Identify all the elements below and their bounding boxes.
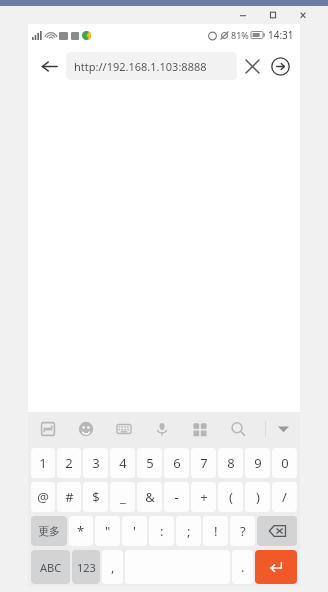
button[interactable]: / bbox=[272, 482, 297, 512]
button[interactable]: Apps bbox=[188, 417, 212, 441]
staticText: ABC bbox=[40, 560, 62, 575]
staticText: ? bbox=[240, 522, 246, 540]
button[interactable]: Maximize bbox=[258, 6, 288, 24]
staticText: # bbox=[65, 488, 74, 506]
staticText: ) bbox=[256, 488, 260, 506]
button[interactable]: Clear bbox=[239, 53, 265, 79]
staticText: ; bbox=[187, 522, 191, 540]
staticText: 5 bbox=[146, 454, 154, 472]
staticText: 14:31 bbox=[268, 28, 294, 42]
staticText: 123 bbox=[77, 560, 96, 575]
button[interactable]: Close bbox=[288, 6, 318, 24]
button[interactable]: $ bbox=[83, 482, 108, 512]
button[interactable]: Minimize bbox=[228, 6, 258, 24]
staticText: 81% bbox=[231, 29, 249, 41]
staticText: - bbox=[174, 488, 179, 506]
button[interactable]: 123 bbox=[72, 550, 100, 584]
button[interactable]: Enter bbox=[255, 550, 297, 584]
button[interactable]: ! bbox=[203, 516, 228, 546]
staticText: @ bbox=[37, 488, 49, 506]
button[interactable]: 6 bbox=[164, 448, 189, 478]
staticText: 6 bbox=[173, 454, 181, 472]
staticText: 0 bbox=[281, 454, 289, 472]
staticText: 更多 bbox=[38, 524, 60, 538]
staticText: 2 bbox=[65, 454, 73, 472]
button[interactable]: ; bbox=[176, 516, 201, 546]
button[interactable]: & bbox=[137, 482, 162, 512]
button[interactable]: * bbox=[69, 516, 93, 546]
staticText: $ bbox=[92, 488, 100, 506]
staticText: + bbox=[200, 488, 208, 506]
button[interactable]: ) bbox=[245, 482, 270, 512]
button[interactable]: Input method bbox=[36, 417, 60, 441]
button[interactable]: , bbox=[102, 550, 123, 584]
staticText: 1 bbox=[39, 454, 47, 472]
button[interactable]: Search bbox=[226, 417, 250, 441]
button[interactable]: " bbox=[95, 516, 120, 546]
button[interactable]: # bbox=[57, 482, 81, 512]
staticText: ' bbox=[133, 522, 136, 540]
button[interactable]: Hide keyboard bbox=[266, 412, 300, 446]
button[interactable]: - bbox=[164, 482, 189, 512]
staticText: 8 bbox=[227, 454, 235, 472]
button[interactable]: Backspace bbox=[257, 516, 297, 546]
button[interactable]: _ bbox=[110, 482, 135, 512]
button[interactable]: Emoji bbox=[74, 417, 98, 441]
staticText: 3 bbox=[92, 454, 100, 472]
button[interactable]: + bbox=[191, 482, 216, 512]
button[interactable]: Go bbox=[266, 52, 294, 80]
button[interactable]: http://192.168.1.103:8888 bbox=[66, 52, 237, 80]
staticText: / bbox=[282, 488, 287, 506]
button[interactable]: 9 bbox=[245, 448, 270, 478]
staticText: " bbox=[105, 522, 111, 540]
button[interactable]: ( bbox=[218, 482, 243, 512]
staticText: & bbox=[145, 488, 155, 506]
staticText: http://192.168.1.103:8888 bbox=[74, 59, 207, 74]
staticText: 4 bbox=[119, 454, 127, 472]
button[interactable]: : bbox=[149, 516, 174, 546]
staticText: ! bbox=[214, 522, 218, 540]
staticText: ( bbox=[229, 488, 233, 506]
staticText: : bbox=[160, 522, 164, 540]
button[interactable]: ABC bbox=[31, 550, 70, 584]
button[interactable]: 8 bbox=[218, 448, 243, 478]
button[interactable]: Voice input bbox=[150, 417, 174, 441]
button[interactable]: 4 bbox=[110, 448, 135, 478]
button[interactable]: 3 bbox=[83, 448, 108, 478]
staticText: _ bbox=[120, 488, 126, 506]
button[interactable]: 更多 bbox=[31, 516, 67, 546]
button[interactable]: 2 bbox=[57, 448, 81, 478]
staticText: 7 bbox=[200, 454, 208, 472]
button[interactable]: ' bbox=[122, 516, 147, 546]
button[interactable]: Back bbox=[34, 51, 64, 81]
button[interactable]: 1 bbox=[31, 448, 55, 478]
staticText: * bbox=[77, 522, 85, 540]
button[interactable]: 7 bbox=[191, 448, 216, 478]
staticText: . bbox=[241, 558, 245, 576]
staticText: , bbox=[111, 558, 115, 576]
button[interactable]: @ bbox=[31, 482, 55, 512]
staticText: 9 bbox=[254, 454, 262, 472]
button[interactable]: Keyboard bbox=[112, 417, 136, 441]
button[interactable]: 5 bbox=[137, 448, 162, 478]
button[interactable]: ? bbox=[230, 516, 255, 546]
button[interactable]: . bbox=[232, 550, 253, 584]
button[interactable]: 0 bbox=[272, 448, 297, 478]
